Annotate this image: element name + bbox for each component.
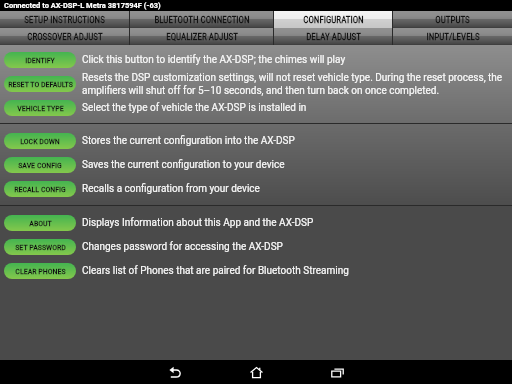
button[interactable]: SET PASSWORD: [4, 239, 76, 255]
staticText: Resets the DSP customization settings, w…: [82, 72, 505, 96]
button[interactable]: Back: [162, 360, 188, 384]
staticText: CROSSOVER ADJUST: [27, 32, 103, 43]
button[interactable]: INPUT/LEVELS: [393, 28, 512, 45]
staticText: INPUT/LEVELS: [426, 32, 480, 43]
button[interactable]: SAVE CONFIG: [0, 153, 512, 177]
button[interactable]: CLEAR PHONES: [0, 259, 512, 283]
button[interactable]: EQUALIZER ADJUST: [130, 28, 273, 45]
button[interactable]: IDENTIFY: [4, 52, 76, 68]
staticText: BLUETOOTH CONNECTION: [154, 15, 250, 26]
staticText: IDENTIFY: [25, 56, 55, 65]
staticText: EQUALIZER ADJUST: [166, 32, 238, 43]
staticText: Displays Information about this App and …: [82, 217, 314, 229]
button[interactable]: ABOUT: [0, 211, 512, 235]
staticText: Stores the current configuration into th…: [82, 135, 295, 147]
button[interactable]: SAVE CONFIG: [4, 157, 76, 173]
staticText: Clears list of Phones that are paired fo…: [82, 265, 349, 277]
button[interactable]: DELAY ADJUST: [274, 28, 392, 45]
staticText: Select the type of vehicle the AX-DSP is…: [82, 102, 307, 114]
button[interactable]: CONFIGURATION: [274, 11, 392, 28]
staticText: VEHICLE TYPE: [17, 104, 64, 113]
button[interactable]: CROSSOVER ADJUST: [0, 28, 129, 45]
staticText: SET PASSWORD: [15, 243, 66, 252]
button[interactable]: CLEAR PHONES: [4, 263, 76, 279]
staticText: LOCK DOWN: [20, 137, 60, 146]
button[interactable]: Home: [243, 360, 269, 384]
staticText: SAVE CONFIG: [18, 161, 62, 170]
staticText: RECALL CONFIG: [14, 185, 66, 194]
staticText: Changes password for accessing the AX-DS…: [82, 241, 283, 253]
button[interactable]: SETUP INSTRUCTIONS: [0, 11, 129, 28]
staticText: DELAY ADJUST: [306, 32, 361, 43]
staticText: Saves the current configuration to your …: [82, 159, 285, 171]
staticText: ABOUT: [29, 219, 52, 228]
staticText: Click this button to identify the AX-DSP…: [82, 54, 346, 66]
staticText: Recalls a configuration from your device: [82, 183, 260, 195]
button[interactable]: OUTPUTS: [393, 11, 512, 28]
staticText: CLEAR PHONES: [15, 267, 66, 276]
button[interactable]: VEHICLE TYPE: [4, 100, 76, 116]
button[interactable]: IDENTIFY: [0, 48, 512, 72]
button[interactable]: ABOUT: [4, 215, 76, 231]
button[interactable]: RECALL CONFIG: [0, 177, 512, 201]
button[interactable]: RECALL CONFIG: [4, 181, 76, 197]
button[interactable]: LOCK DOWN: [4, 133, 76, 149]
staticText: OUTPUTS: [435, 15, 470, 26]
button[interactable]: VEHICLE TYPE: [0, 96, 512, 120]
button[interactable]: RESET TO DEFAULTS: [4, 76, 76, 92]
staticText: CONFIGURATION: [303, 15, 364, 26]
staticText: Connected to AX-DSP-L Metra 3817594F (-6…: [4, 1, 161, 10]
staticText: SETUP INSTRUCTIONS: [24, 15, 105, 26]
button[interactable]: SET PASSWORD: [0, 235, 512, 259]
button[interactable]: LOCK DOWN: [0, 129, 512, 153]
button[interactable]: RESET TO DEFAULTS: [0, 72, 512, 96]
staticText: RESET TO DEFAULTS: [8, 80, 73, 89]
button[interactable]: Recents: [324, 360, 350, 384]
button[interactable]: BLUETOOTH CONNECTION: [130, 11, 273, 28]
